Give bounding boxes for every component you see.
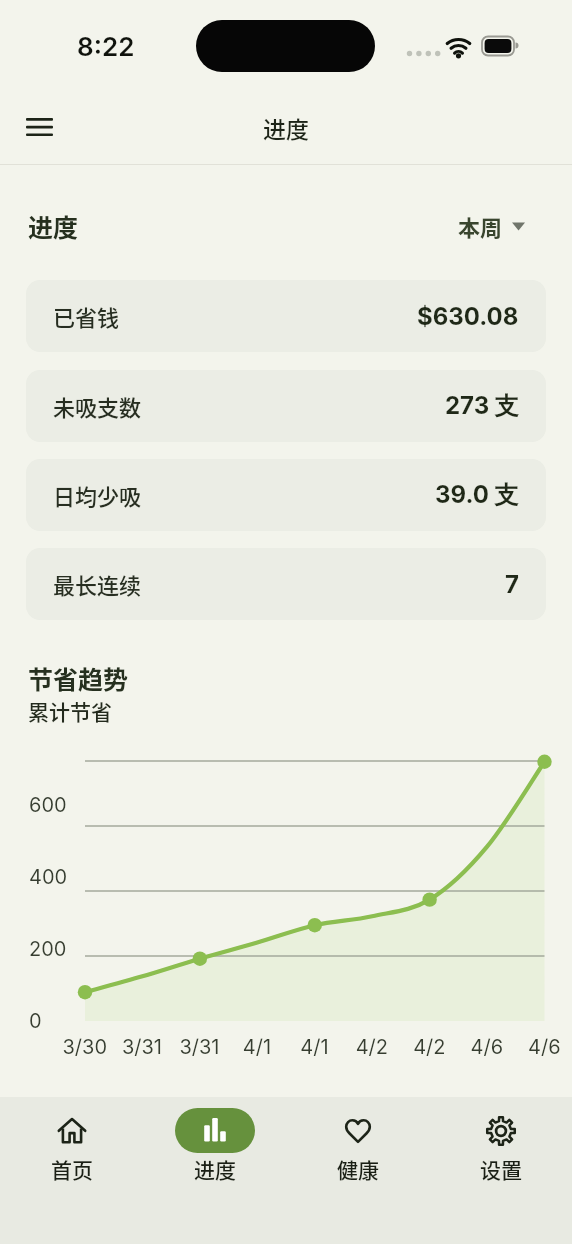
button[interactable]: 首页 [0, 1097, 143, 1184]
staticText: 8:22 [77, 31, 135, 62]
staticText: 已省钱 [53, 300, 120, 332]
staticText: 39.0 支 [435, 480, 519, 510]
staticText: 未吸支数 [53, 390, 142, 422]
staticText: 进度 [263, 111, 309, 144]
button[interactable]: 未吸支数 [26, 370, 546, 442]
button[interactable]: 日均少吸 [26, 459, 546, 531]
staticText: 设置 [480, 1154, 522, 1184]
staticText: 7 [505, 570, 519, 599]
button[interactable]: 健康 [286, 1097, 429, 1184]
button[interactable]: 设置 [429, 1097, 572, 1184]
button[interactable]: 最长连续 [26, 548, 546, 620]
button[interactable]: 已省钱 [26, 280, 546, 352]
staticText: 最长连续 [53, 568, 142, 600]
button[interactable] [15, 103, 63, 151]
staticText: 日均少吸 [53, 479, 142, 511]
staticText: $630.08 [417, 302, 519, 331]
staticText: 节省趋势 [28, 660, 129, 696]
staticText: 健康 [337, 1154, 379, 1184]
staticText: 累计节省 [28, 696, 112, 726]
staticText: 进度 [194, 1154, 236, 1184]
button[interactable]: 进度 [143, 1097, 286, 1184]
staticText: 进度 [28, 208, 79, 244]
staticText: 273 支 [445, 391, 519, 421]
staticText: 本周 [458, 210, 503, 242]
button[interactable]: 本周 [458, 210, 525, 242]
staticText: 首页 [51, 1154, 93, 1184]
